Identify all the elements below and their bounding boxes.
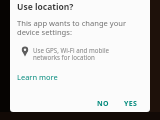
button[interactable]: NO [92, 94, 115, 112]
staticText: Use GPS, Wi-Fi and mobile networks for l… [33, 46, 109, 62]
staticText: NO [97, 99, 110, 109]
staticText: This app wants to change your device set… [17, 18, 127, 38]
staticText: YES [124, 99, 138, 109]
staticText: Use location? [17, 1, 74, 13]
button[interactable]: YES [119, 94, 143, 112]
staticText: Learn more [17, 72, 58, 82]
button[interactable]: Learn more [14, 69, 61, 85]
